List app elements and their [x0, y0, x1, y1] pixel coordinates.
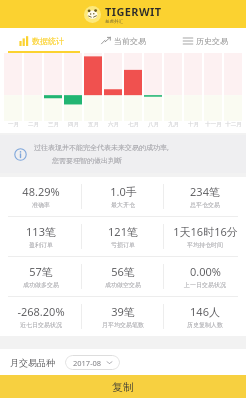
staticText: 过往表现并不能完全代表未来交易的成功率, — [34, 143, 169, 153]
staticText: 57笔 — [29, 264, 53, 279]
staticText: 1天16时16分 — [173, 224, 238, 239]
staticText: 十二月 — [225, 121, 242, 128]
staticText: 平均持仓时间 — [187, 241, 223, 249]
staticText: 五月 — [88, 121, 99, 128]
staticText: 48.29% — [22, 184, 60, 199]
staticText: 总平仓交易 — [190, 201, 220, 209]
staticText: 八月 — [148, 121, 159, 128]
staticText: 234笔 — [190, 184, 220, 199]
staticText: 盈利订单 — [29, 241, 53, 249]
staticText: 2017-08 — [73, 358, 102, 368]
staticText: 成功做多交易 — [23, 281, 59, 289]
staticText: 老虎外汇 — [105, 19, 123, 25]
staticText: 月平均交易笔数 — [102, 321, 144, 329]
staticText: 六月 — [108, 121, 119, 128]
staticText: 当前交易 — [114, 36, 146, 46]
staticText: 亏损订单 — [111, 241, 135, 249]
button[interactable]: 当前交易 — [82, 28, 164, 53]
staticText: 上一日交易状况 — [184, 281, 226, 289]
staticText: 56笔 — [111, 264, 135, 279]
staticText: 1.0手 — [110, 184, 137, 199]
staticText: 准确率 — [32, 201, 50, 209]
staticText: 复制 — [112, 380, 134, 394]
staticText: 39笔 — [111, 304, 135, 319]
staticText: 七月 — [128, 121, 139, 128]
staticText: 历史交易 — [196, 36, 228, 46]
staticText: TIGERWIT — [105, 4, 162, 19]
staticText: 月交易品种 — [10, 357, 55, 368]
staticText: 数据统计 — [32, 36, 64, 46]
staticText: 二月 — [28, 121, 39, 128]
button[interactable]: 数据统计 — [0, 28, 82, 53]
staticText: 十一月 — [205, 121, 222, 128]
button[interactable]: 2017-08 — [65, 355, 120, 370]
staticText: 146人 — [190, 304, 220, 319]
staticText: 最大开仓 — [111, 201, 135, 209]
button[interactable]: 复制 — [0, 375, 246, 398]
staticText: 一月 — [8, 121, 19, 128]
staticText: -268.20% — [17, 304, 65, 319]
staticText: 113笔 — [26, 224, 56, 239]
staticText: 九月 — [168, 121, 179, 128]
staticText: 您需要理智的做出判断 — [52, 156, 122, 165]
button[interactable]: 历史交易 — [164, 28, 246, 53]
staticText: 三月 — [48, 121, 59, 128]
staticText: 近七日交易状况 — [20, 321, 62, 329]
staticText: 0.00% — [190, 264, 221, 279]
staticText: 四月 — [68, 121, 79, 128]
staticText: 成功做空交易 — [105, 281, 141, 289]
staticText: 121笔 — [108, 224, 138, 239]
staticText: 历史复制人数 — [187, 321, 223, 329]
staticText: 十月 — [188, 121, 199, 128]
